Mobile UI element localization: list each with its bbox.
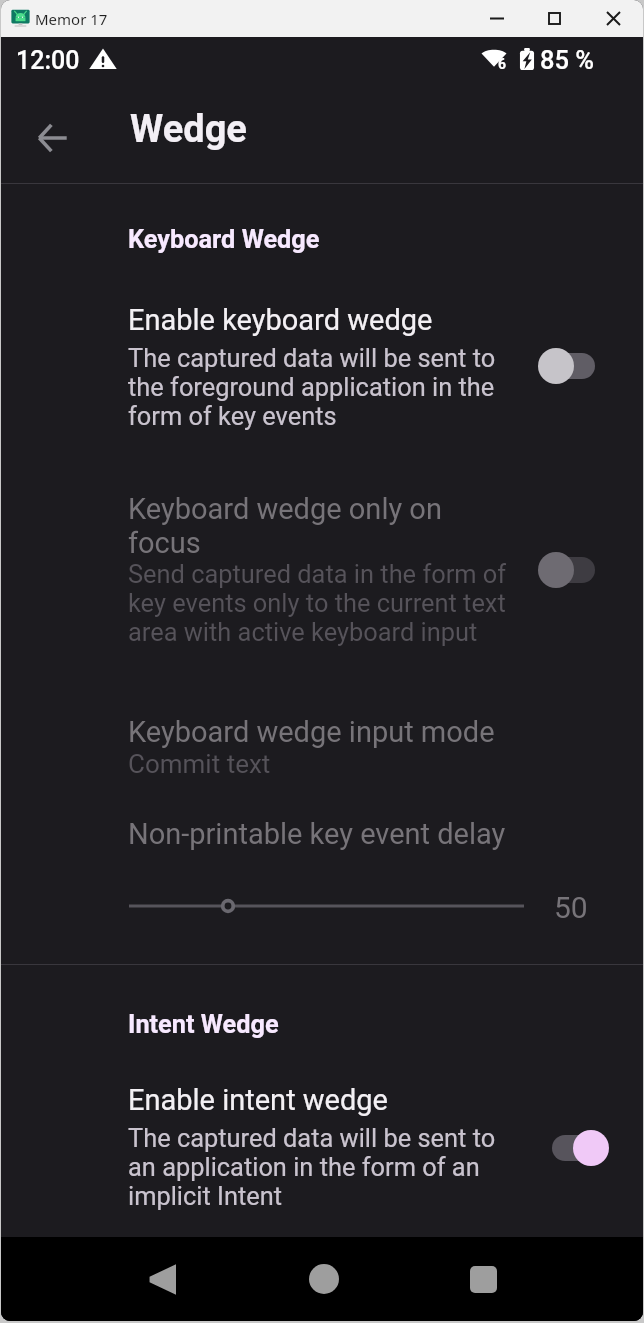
staticText: Non-printable key event delay [128,817,506,851]
button[interactable] [1,1063,643,1213]
staticText: Send captured data in the form of key ev… [128,559,518,647]
button[interactable]: Recent apps [435,1239,532,1319]
staticText: The captured data will be sent to the fo… [128,343,518,431]
button[interactable]: Close [584,0,643,37]
button[interactable]: Minimize [467,0,526,37]
staticText: Keyboard wedge only on focus [128,492,498,560]
button[interactable] [1,283,643,433]
button[interactable]: Turn on [537,347,611,385]
staticText: 6 [498,56,507,72]
staticText: Enable intent wedge [128,1083,388,1117]
button[interactable]: Back [114,1239,211,1319]
button[interactable]: Back [14,98,90,177]
staticText: Memor 17 [35,9,108,29]
button[interactable]: Turn on [537,551,611,589]
staticText: Intent Wedge [128,1010,279,1040]
staticText: The captured data will be sent to an app… [128,1123,518,1211]
staticText: 50 [554,890,588,925]
button[interactable]: Keyboard wedge input mode [1,715,643,779]
staticText: 12:00 [16,46,80,75]
button[interactable]: Maximize [525,0,584,37]
staticText: 85 % [540,45,595,75]
button[interactable] [1,468,643,648]
button[interactable]: Home [275,1239,372,1319]
button[interactable]: Turn off [537,1129,611,1167]
staticText: Enable keyboard wedge [128,303,433,337]
staticText: Keyboard Wedge [128,225,320,255]
staticText: Keyboard wedge input mode [128,715,495,749]
staticText: Wedge [130,107,247,152]
staticText: Commit text [128,749,271,779]
